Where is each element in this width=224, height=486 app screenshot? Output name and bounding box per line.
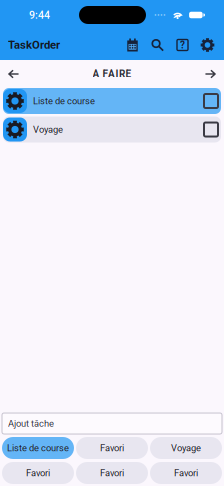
staticText: Ajout tâche <box>8 418 54 429</box>
staticText: Voyage <box>33 124 63 135</box>
button[interactable]: Liste de course <box>2 437 74 459</box>
button[interactable]: Next list <box>198 61 223 86</box>
staticText: Favori <box>26 467 50 478</box>
button[interactable]: Voyage <box>3 116 221 142</box>
staticText: A FAIRE <box>92 68 131 80</box>
staticText: 9:44 <box>29 9 50 21</box>
button[interactable]: Favori <box>76 462 148 484</box>
staticText: Favori <box>100 467 124 478</box>
button[interactable]: Previous list <box>1 61 26 86</box>
staticText: Liste de course <box>33 95 95 106</box>
button[interactable]: Search <box>145 32 170 58</box>
button[interactable]: Settings <box>195 32 220 58</box>
staticText: Liste de course <box>7 442 69 453</box>
staticText: TaskOrder <box>8 38 60 52</box>
button[interactable]: Liste de course <box>3 88 221 114</box>
button[interactable]: Help <box>170 32 195 58</box>
staticText: ? <box>180 39 185 51</box>
staticText: Favori <box>174 467 198 478</box>
staticText: Voyage <box>171 442 201 453</box>
button[interactable]: Favori <box>76 437 148 459</box>
button[interactable]: Favori <box>2 462 74 484</box>
button[interactable]: Voyage <box>150 437 222 459</box>
button[interactable]: Favori <box>150 462 222 484</box>
staticText: •••• <box>154 10 166 20</box>
button[interactable]: Calendar <box>120 32 145 58</box>
staticText: Favori <box>100 442 124 453</box>
